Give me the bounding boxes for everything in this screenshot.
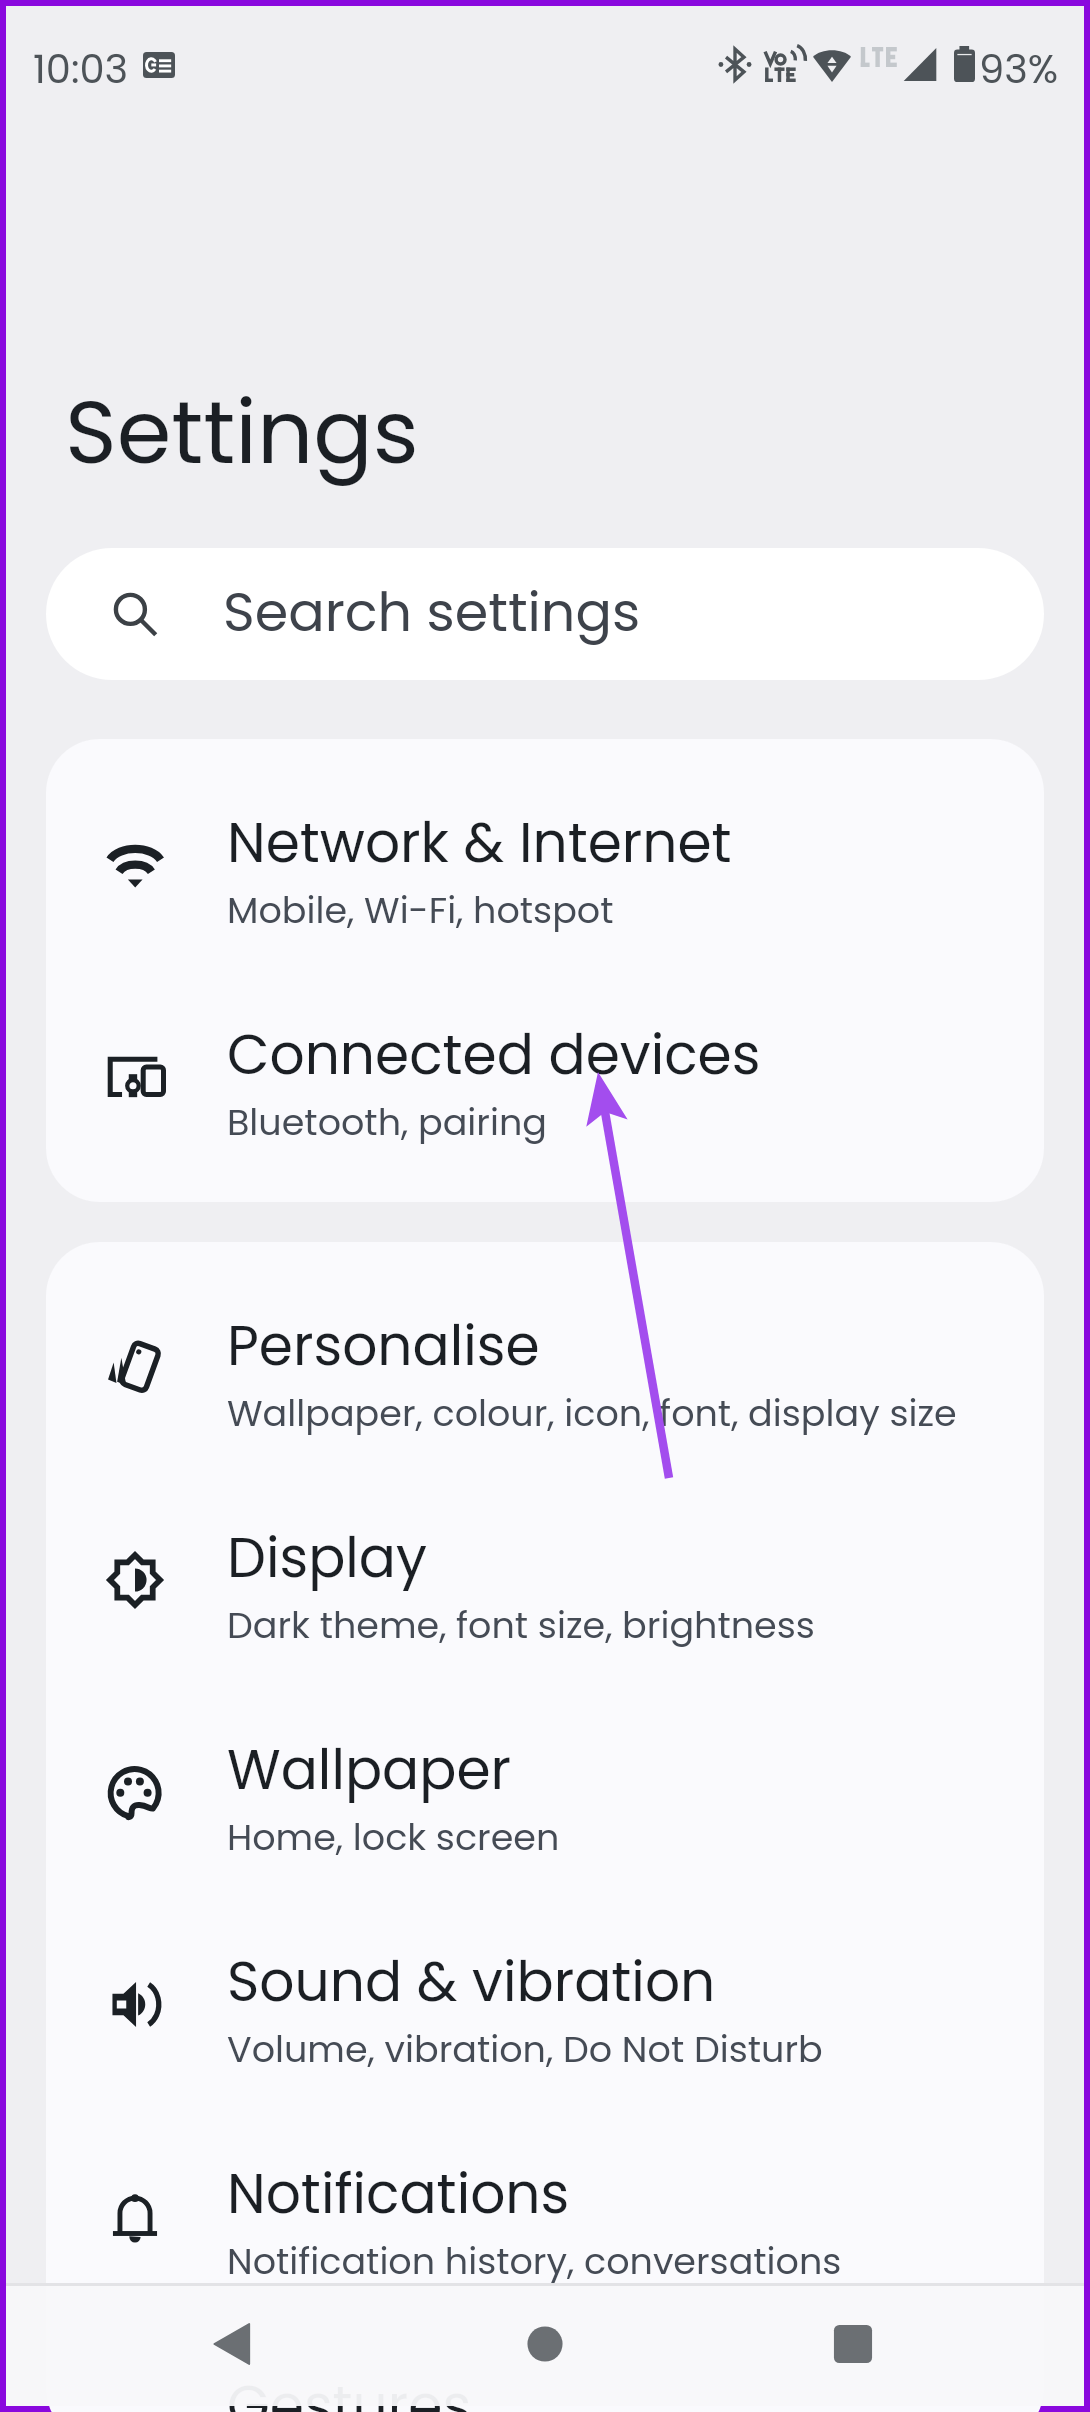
staticText: Connected devices <box>227 1016 761 1093</box>
button[interactable]: Home <box>495 2294 595 2394</box>
staticText: 10:03 <box>33 41 129 97</box>
button[interactable] <box>46 1898 1044 2110</box>
staticText: Wallpaper, colour, icon, font, display s… <box>227 1388 957 1439</box>
staticText: Home, lock screen <box>227 1812 560 1863</box>
staticText: Display <box>227 1519 427 1596</box>
button[interactable]: Back <box>183 2294 283 2394</box>
button[interactable] <box>46 759 1044 971</box>
button[interactable] <box>46 2322 1044 2412</box>
button[interactable] <box>46 1262 1044 1474</box>
button[interactable] <box>46 971 1044 1183</box>
staticText: 93% <box>979 41 1059 97</box>
staticText: Dark theme, font size, brightness <box>227 1600 815 1651</box>
staticText: Wallpaper <box>227 1731 512 1808</box>
button[interactable] <box>46 1474 1044 1686</box>
staticText: Notification history, conversations <box>227 2236 842 2287</box>
button[interactable] <box>46 2110 1044 2322</box>
button[interactable]: Search settings <box>46 548 1044 680</box>
staticText: Gestures <box>227 2367 472 2412</box>
staticText: Network & Internet <box>227 804 732 881</box>
staticText: Sound & vibration <box>227 1943 716 2020</box>
button[interactable] <box>46 1686 1044 1898</box>
staticText: Settings <box>65 371 419 494</box>
staticText: Volume, vibration, Do Not Disturb <box>227 2024 823 2075</box>
staticText: Mobile, Wi-Fi, hotspot <box>227 885 614 936</box>
button[interactable]: Recents <box>803 2294 903 2394</box>
staticText: Search settings <box>223 574 641 650</box>
staticText: Bluetooth, pairing <box>227 1097 547 1148</box>
staticText: Notifications <box>227 2155 570 2232</box>
staticText: Personalise <box>227 1307 540 1384</box>
